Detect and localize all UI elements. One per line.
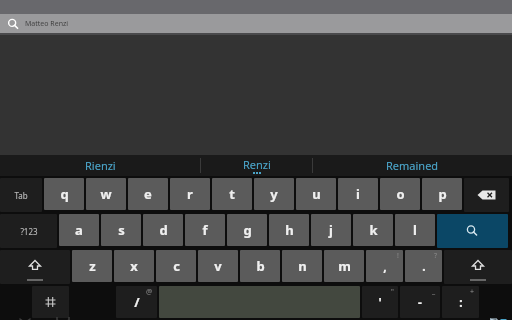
button[interactable]: e <box>128 178 168 210</box>
button[interactable]: l <box>395 214 435 246</box>
staticText: : <box>459 294 463 310</box>
button[interactable]: Backspace <box>464 178 509 212</box>
staticText: m <box>338 257 351 275</box>
button[interactable]: t <box>212 178 252 210</box>
button[interactable]: - <box>400 286 440 318</box>
button[interactable]: g <box>227 214 267 246</box>
button[interactable]: Shift <box>0 250 70 284</box>
staticText: ?123 <box>20 226 38 237</box>
button[interactable]: Renzi <box>201 155 312 176</box>
staticText: u <box>312 185 321 203</box>
button[interactable]: Remained <box>313 155 512 176</box>
button[interactable]: Tab <box>0 178 42 212</box>
button[interactable]: f <box>185 214 225 246</box>
staticText: f <box>202 221 208 239</box>
staticText: k <box>369 221 378 239</box>
button[interactable]: k <box>353 214 393 246</box>
button[interactable]: y <box>254 178 294 210</box>
staticText: Matteo Renzi <box>25 19 69 29</box>
staticText: Remained <box>386 158 439 173</box>
staticText: - <box>418 294 422 310</box>
staticText: / <box>134 293 140 311</box>
staticText: h <box>285 221 294 239</box>
button[interactable]: j <box>311 214 351 246</box>
button[interactable]: o <box>380 178 420 210</box>
staticText: @ <box>146 287 153 297</box>
staticText: Renzi <box>243 157 271 172</box>
staticText: ' <box>378 294 382 310</box>
button[interactable]: r <box>170 178 210 210</box>
staticText: " <box>391 287 394 297</box>
staticText: s <box>118 221 125 239</box>
staticText: x <box>130 257 138 275</box>
staticText: , <box>383 258 387 274</box>
button[interactable]: v <box>198 250 238 282</box>
staticText: ! <box>397 251 399 261</box>
staticText: c <box>173 257 180 275</box>
button[interactable]: Matteo Renzi <box>0 14 512 33</box>
button[interactable]: Symbols <box>0 214 57 248</box>
button[interactable]: Search <box>437 214 508 248</box>
staticText: q <box>60 185 69 203</box>
staticText: y <box>270 185 278 203</box>
button[interactable]: w <box>86 178 126 210</box>
button[interactable]: c <box>156 250 196 282</box>
button[interactable]: p <box>422 178 462 210</box>
staticText: i <box>356 185 360 203</box>
staticText: a <box>75 221 83 239</box>
staticText: n <box>298 257 307 275</box>
button[interactable]: Input method <box>32 286 69 318</box>
button[interactable]: d <box>143 214 183 246</box>
button[interactable]: ' <box>362 286 398 318</box>
button[interactable]: h <box>269 214 309 246</box>
staticText: o <box>396 185 405 203</box>
staticText: d <box>159 221 168 239</box>
staticText: w <box>100 185 112 203</box>
button[interactable]: m <box>324 250 364 282</box>
button[interactable]: b <box>240 250 280 282</box>
button[interactable]: z <box>72 250 112 282</box>
button[interactable]: , <box>366 250 403 282</box>
button[interactable]: x <box>114 250 154 282</box>
staticText: v <box>214 257 222 275</box>
button[interactable]: s <box>101 214 141 246</box>
staticText: + <box>470 287 475 297</box>
button[interactable]: Shift <box>444 250 512 284</box>
staticText: z <box>89 257 96 275</box>
staticText: e <box>144 185 152 203</box>
button[interactable]: i <box>338 178 378 210</box>
button[interactable]: u <box>296 178 336 210</box>
staticText: ? <box>434 251 438 261</box>
button[interactable]: . <box>405 250 442 282</box>
staticText: t <box>229 185 235 203</box>
staticText: g <box>243 221 252 239</box>
staticText: Tab <box>14 190 28 201</box>
staticText: p <box>438 185 447 203</box>
staticText: b <box>256 257 265 275</box>
staticText: r <box>187 185 193 203</box>
button[interactable]: : <box>442 286 479 318</box>
staticText: . <box>422 258 426 274</box>
button[interactable]: n <box>282 250 322 282</box>
button[interactable]: / <box>116 286 157 318</box>
staticText: Rienzi <box>85 158 116 173</box>
staticText: j <box>329 221 333 239</box>
button[interactable]: q <box>44 178 84 210</box>
staticText: l <box>413 221 417 239</box>
staticText: _ <box>432 287 436 297</box>
button[interactable]: a <box>59 214 99 246</box>
button[interactable]: Rienzi <box>0 155 200 176</box>
